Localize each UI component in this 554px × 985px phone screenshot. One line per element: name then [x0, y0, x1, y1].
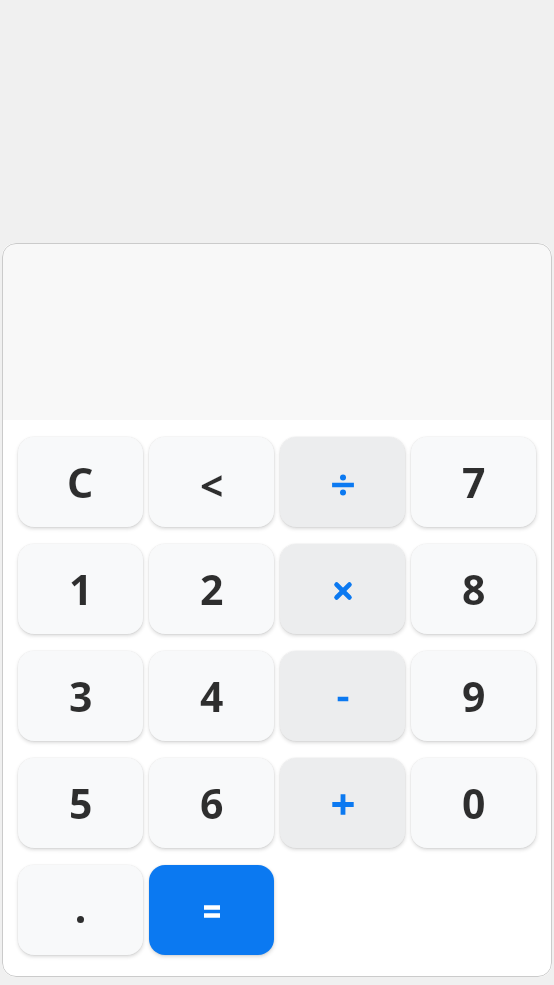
- staticText: 1: [69, 561, 93, 617]
- button[interactable]: 7: [411, 437, 536, 527]
- button[interactable]: 2: [149, 544, 274, 634]
- button[interactable]: 1: [18, 544, 143, 634]
- button[interactable]: <: [149, 437, 274, 527]
- button[interactable]: 8: [411, 544, 536, 634]
- button[interactable]: 0: [411, 758, 536, 848]
- staticText: 7: [462, 454, 486, 510]
- staticText: 5: [69, 775, 93, 831]
- button[interactable]: [280, 651, 405, 741]
- button[interactable]: 5: [18, 758, 143, 848]
- staticText: 9: [462, 668, 486, 724]
- staticText: 0: [462, 775, 486, 831]
- button[interactable]: [18, 865, 143, 955]
- staticText: 6: [200, 775, 224, 831]
- staticText: 8: [462, 561, 486, 617]
- button[interactable]: 4: [149, 651, 274, 741]
- button[interactable]: [149, 865, 274, 955]
- staticText: <: [200, 457, 224, 513]
- button[interactable]: [280, 758, 405, 848]
- button[interactable]: [280, 437, 405, 527]
- button[interactable]: 3: [18, 651, 143, 741]
- staticText: 4: [200, 668, 224, 724]
- button[interactable]: C: [18, 437, 143, 527]
- staticText: 2: [200, 561, 224, 617]
- button[interactable]: 9: [411, 651, 536, 741]
- staticText: C: [67, 454, 94, 510]
- button[interactable]: [280, 544, 405, 634]
- staticText: 3: [69, 668, 93, 724]
- button[interactable]: 6: [149, 758, 274, 848]
